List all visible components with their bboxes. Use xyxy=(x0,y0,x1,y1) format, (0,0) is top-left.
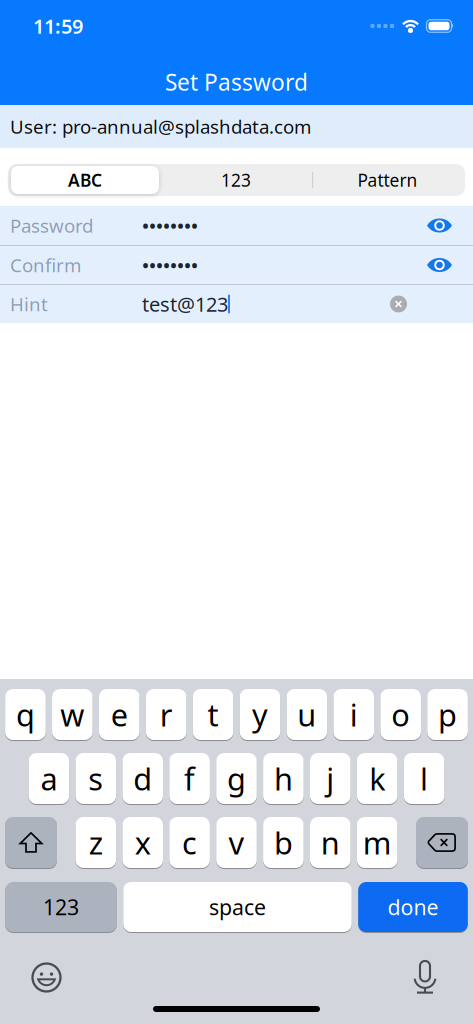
button[interactable]: 123 xyxy=(5,882,117,932)
button[interactable]: Shift xyxy=(5,817,57,868)
staticText: t xyxy=(207,694,218,735)
staticText: Password xyxy=(10,213,93,238)
button[interactable]: r xyxy=(146,689,186,740)
button[interactable]: d xyxy=(122,753,163,804)
staticText: s xyxy=(88,758,103,799)
staticText: o xyxy=(391,694,410,735)
staticText: User: pro-annual@splashdata.com xyxy=(10,114,311,139)
staticText: w xyxy=(60,694,84,735)
button[interactable]: v xyxy=(216,817,257,868)
staticText: n xyxy=(321,822,340,863)
button[interactable]: Show confirm password xyxy=(427,258,473,272)
staticText: q xyxy=(16,694,35,735)
staticText: •••••••• xyxy=(142,213,198,238)
staticText: p xyxy=(438,694,457,735)
staticText: test@123 xyxy=(142,291,228,317)
button[interactable]: q xyxy=(5,689,46,740)
staticText: y xyxy=(252,694,268,735)
staticText: Set Password xyxy=(165,67,308,97)
button[interactable]: g xyxy=(216,753,257,804)
staticText: Pattern xyxy=(357,168,417,191)
button[interactable]: j xyxy=(310,753,351,804)
staticText: z xyxy=(89,822,103,863)
staticText: c xyxy=(182,822,197,863)
button[interactable]: ABC xyxy=(9,164,161,196)
staticText: m xyxy=(363,822,392,863)
staticText: 11:59 xyxy=(33,13,83,39)
staticText: l xyxy=(420,758,428,799)
button[interactable]: s xyxy=(75,753,116,804)
button[interactable]: 123 xyxy=(161,164,311,196)
staticText: k xyxy=(369,758,385,799)
staticText: j xyxy=(326,758,334,799)
staticText: b xyxy=(274,822,293,863)
staticText: h xyxy=(274,758,293,799)
button[interactable]: c xyxy=(169,817,210,868)
button[interactable]: h xyxy=(263,753,304,804)
button[interactable]: b xyxy=(263,817,304,868)
button[interactable]: k xyxy=(357,753,397,804)
staticText: Hint xyxy=(10,292,48,316)
staticText: x xyxy=(135,822,151,863)
button[interactable]: space xyxy=(123,882,352,932)
button[interactable]: Clear hint xyxy=(390,295,473,312)
button[interactable]: e xyxy=(99,689,139,740)
staticText: 123 xyxy=(43,893,79,921)
button[interactable]: m xyxy=(357,817,397,868)
staticText: Confirm xyxy=(10,253,81,277)
button[interactable]: Pattern xyxy=(311,164,464,196)
button[interactable]: f xyxy=(169,753,210,804)
button[interactable]: x xyxy=(122,817,163,868)
button[interactable]: i xyxy=(333,689,374,740)
button[interactable]: done xyxy=(358,882,468,932)
staticText: done xyxy=(387,893,438,921)
button[interactable]: u xyxy=(286,689,327,740)
staticText: 123 xyxy=(221,168,251,191)
staticText: r xyxy=(160,694,173,735)
button[interactable]: Emoji xyxy=(32,963,61,992)
staticText: ABC xyxy=(68,168,102,191)
button[interactable]: z xyxy=(75,817,116,868)
button[interactable]: Delete xyxy=(416,817,468,868)
button[interactable]: w xyxy=(52,689,93,740)
staticText: g xyxy=(227,758,246,799)
button[interactable]: Show password xyxy=(427,218,473,232)
staticText: i xyxy=(350,694,358,735)
button[interactable]: o xyxy=(380,689,421,740)
staticText: d xyxy=(133,758,152,799)
button[interactable]: t xyxy=(193,689,233,740)
staticText: space xyxy=(209,893,266,921)
button[interactable]: n xyxy=(310,817,351,868)
staticText: f xyxy=(184,758,195,799)
staticText: a xyxy=(40,758,57,799)
button[interactable]: l xyxy=(404,753,444,804)
button[interactable]: y xyxy=(240,689,280,740)
button[interactable]: p xyxy=(427,689,468,740)
staticText: e xyxy=(111,694,128,735)
staticText: •••••••• xyxy=(142,253,198,277)
staticText: u xyxy=(297,694,316,735)
button[interactable]: Dictate xyxy=(413,961,437,994)
staticText: v xyxy=(228,822,244,863)
button[interactable]: a xyxy=(29,753,69,804)
